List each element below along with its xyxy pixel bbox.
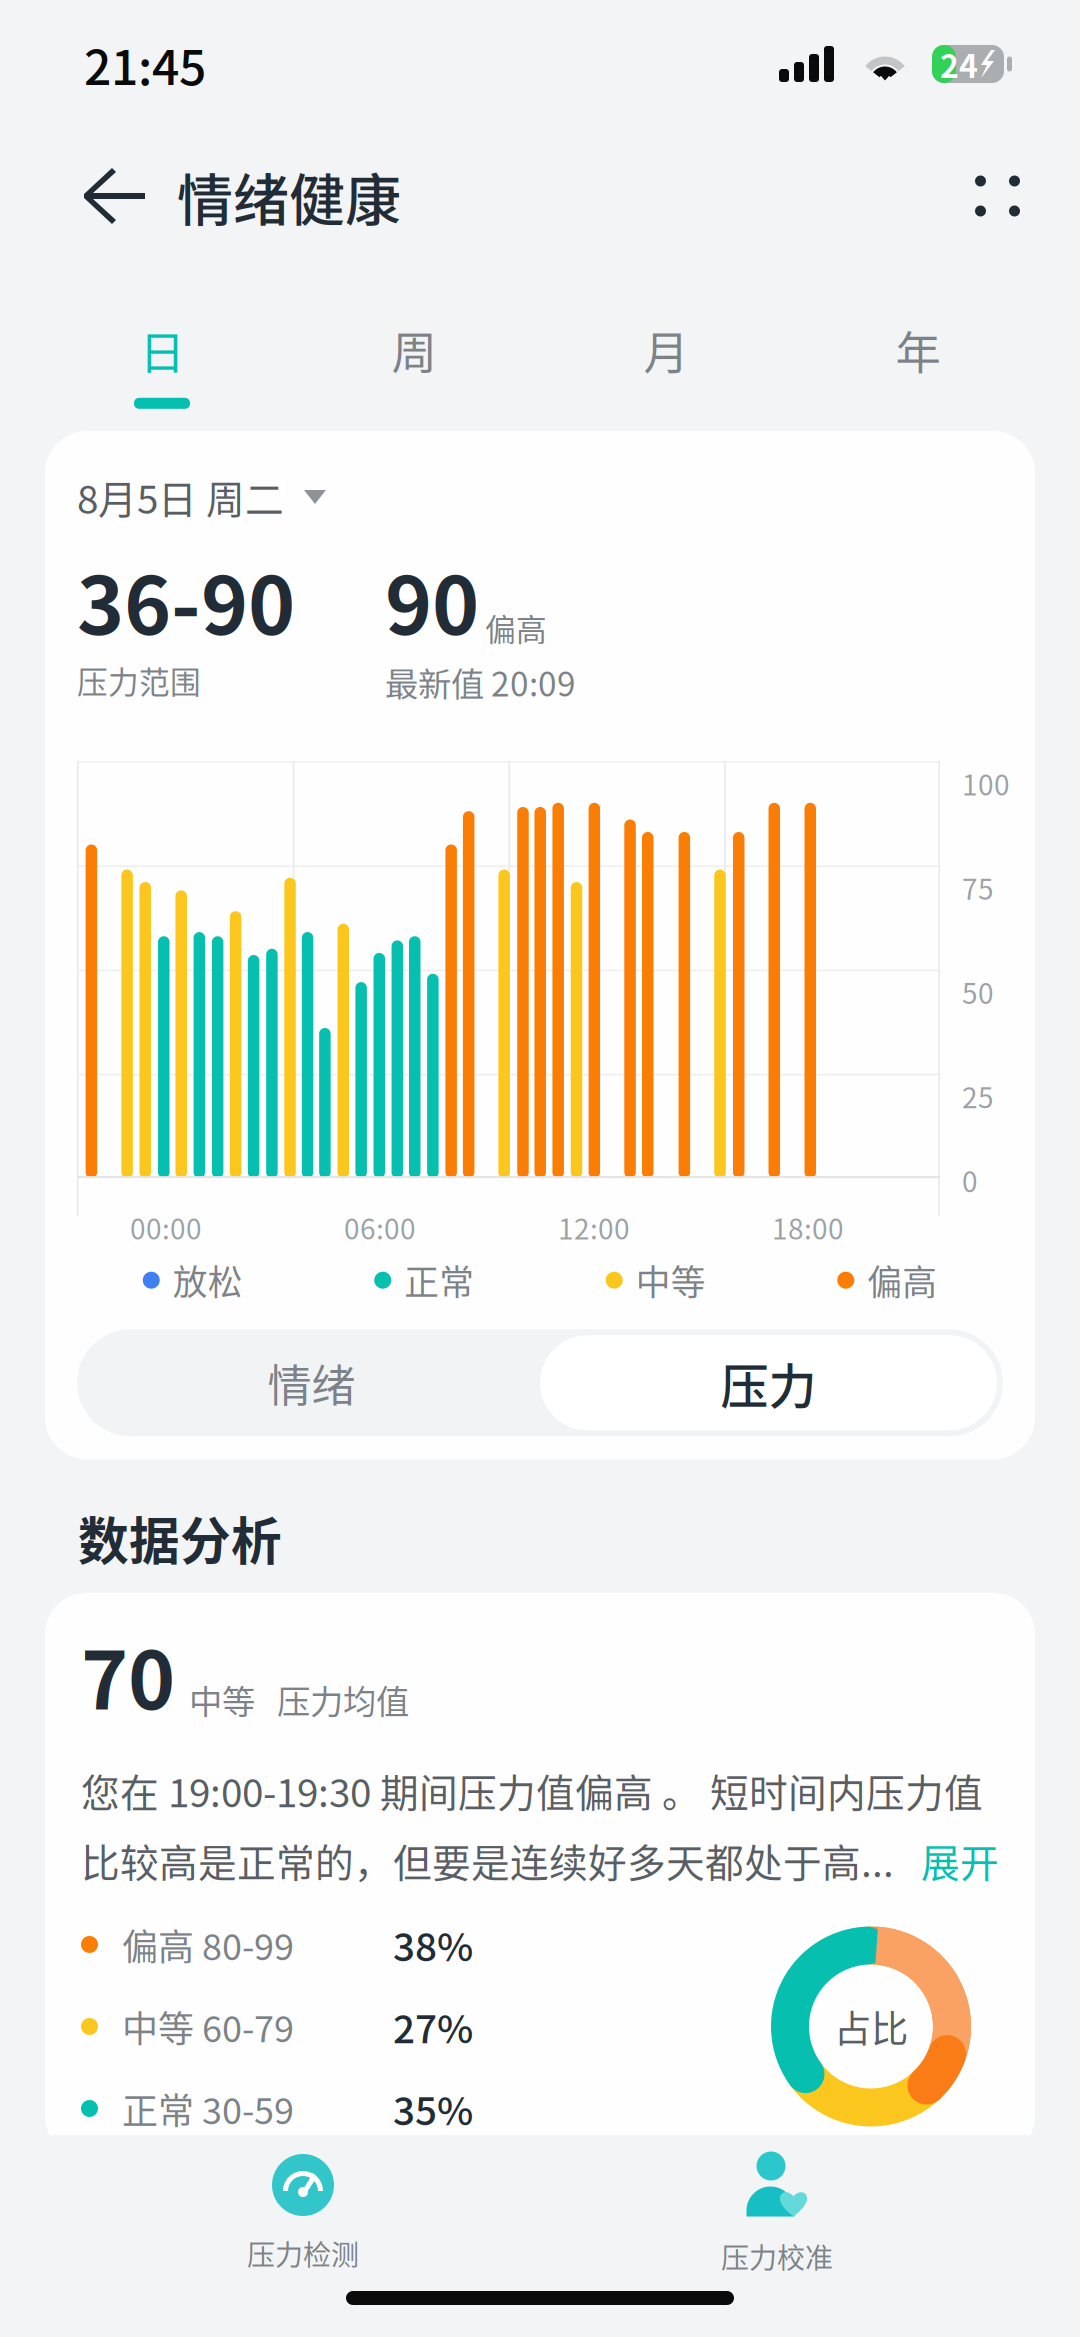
staticText: 展开 [921,1832,999,1888]
button[interactable]: 压力 [540,1335,997,1430]
staticText: 中等 60-79 [122,2000,294,2052]
staticText: 18:00 [772,1207,844,1248]
staticText: 25 [962,1076,994,1116]
staticText: 压力均值 [277,1675,409,1723]
staticText: 12:00 [558,1207,630,1248]
staticText: 38% [393,1916,473,1972]
staticText: 偏高 [485,605,547,650]
button[interactable]: 8月5日 周二 [77,431,326,525]
staticText: 90 [385,542,479,658]
staticText: 情绪健康 [177,155,401,237]
button[interactable]: 日 [36,260,288,435]
staticText: 中等 [636,1255,706,1305]
button[interactable]: 年 [792,260,1044,435]
staticText: 压力范围 [77,658,201,702]
button[interactable]: Back [66,135,163,257]
staticText: 占比 [834,1999,908,2053]
staticText: 24 [940,41,978,87]
staticText: 比较高是正常的，但要是连续好多天都处于高... [81,1832,894,1888]
button[interactable]: More options [947,147,1048,244]
staticText: 正常 30-59 [122,2082,294,2134]
staticText: 100 [962,763,1010,804]
staticText: 36-90 [77,542,295,658]
staticText: 0 [962,1160,978,1200]
staticText: 27% [393,1998,473,2054]
staticText: 最新值 20:09 [385,658,576,706]
staticText: 21:45 [84,29,206,99]
staticText: 偏高 80-99 [122,1918,294,1970]
staticText: 周 [391,317,436,383]
staticText: 35% [393,2080,473,2136]
button[interactable]: 周 [288,260,540,435]
staticText: 50 [962,972,994,1012]
button[interactable]: 情绪 [83,1335,540,1430]
staticText: 压力校准 [721,2236,833,2276]
staticText: 正常 [404,1255,474,1305]
staticText: 压力检测 [247,2233,359,2273]
staticText: 数据分析 [78,1501,282,1575]
staticText: 月 [643,317,688,383]
button[interactable]: 月 [540,260,792,435]
staticText: 情绪 [267,1351,355,1415]
staticText: 06:00 [344,1207,416,1248]
button[interactable]: 压力检测 [66,2154,540,2273]
staticText: 75 [962,867,994,908]
staticText: 70 [81,1617,175,1732]
staticText: 压力 [720,1348,816,1417]
staticText: 中等 [189,1675,255,1723]
staticText: 您在 19:00-19:30 期间压力值偏高 。 短时间内压力值 [81,1762,983,1818]
staticText: 年 [895,317,940,383]
staticText: 日 [139,317,184,383]
button[interactable]: 压力校准 [540,2151,1014,2276]
button[interactable]: 展开 [921,1832,999,1888]
staticText: 00:00 [130,1207,202,1248]
staticText: 8月5日 周二 [77,469,284,525]
staticText: 偏高 [867,1255,937,1305]
staticText: 放松 [173,1255,243,1305]
